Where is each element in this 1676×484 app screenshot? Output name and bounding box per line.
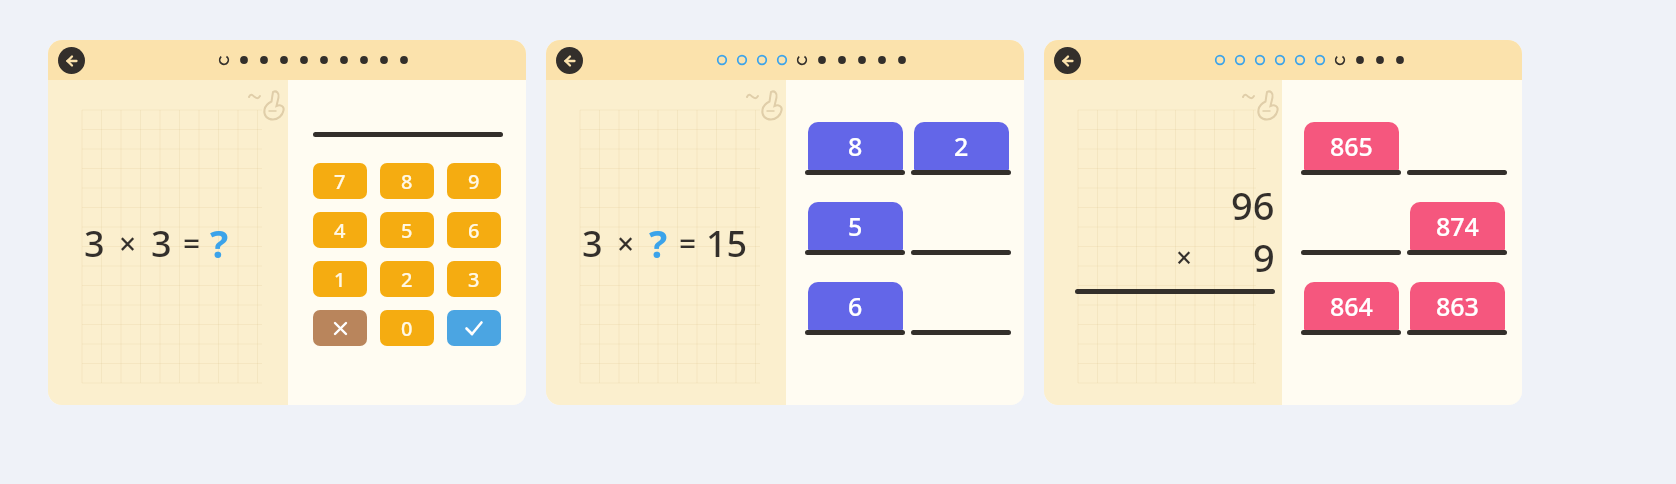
button[interactable]: 864	[1304, 282, 1399, 330]
button[interactable]: 865	[1304, 122, 1399, 170]
staticText: 3	[582, 219, 603, 268]
staticText: 9	[468, 168, 480, 195]
button[interactable]: 2	[380, 261, 434, 297]
button[interactable]: Back	[1054, 47, 1081, 74]
button[interactable]: 9	[447, 163, 501, 199]
button[interactable]: 6	[447, 212, 501, 248]
staticText: 865	[1330, 129, 1373, 163]
staticText: 2	[954, 129, 969, 163]
button[interactable]: 8	[808, 122, 903, 170]
button[interactable]: 2	[914, 122, 1009, 170]
staticText: 5	[848, 209, 863, 243]
button[interactable]: 5	[380, 212, 434, 248]
staticText: 6	[848, 289, 863, 323]
staticText: 15	[706, 219, 748, 268]
staticText: 0	[401, 315, 413, 342]
button[interactable]: Delete	[313, 310, 367, 346]
button[interactable]: 6	[808, 282, 903, 330]
staticText: 7	[334, 168, 346, 195]
staticText: 9	[1253, 231, 1275, 283]
button[interactable]: 7	[313, 163, 367, 199]
button[interactable]: Back	[58, 47, 85, 74]
staticText: 3	[151, 219, 172, 268]
button[interactable]: 8	[380, 163, 434, 199]
button[interactable]: 874	[1410, 202, 1505, 250]
staticText: 3	[468, 266, 480, 293]
button[interactable]: 3	[447, 261, 501, 297]
staticText: 8	[848, 129, 863, 163]
staticText: 4	[334, 217, 346, 244]
staticText: 863	[1436, 289, 1479, 323]
staticText: 96	[1231, 179, 1275, 231]
staticText: 2	[401, 266, 413, 293]
button[interactable]: 5	[808, 202, 903, 250]
staticText: =	[183, 223, 201, 264]
staticText: 8	[401, 168, 413, 195]
button[interactable]: 4	[313, 212, 367, 248]
staticText: ?	[210, 217, 229, 269]
button[interactable]: Back	[556, 47, 583, 74]
staticText: 3	[84, 219, 105, 268]
staticText: ×	[617, 223, 635, 264]
staticText: 1	[334, 266, 346, 293]
staticText: 5	[401, 217, 413, 244]
staticText: 864	[1330, 289, 1373, 323]
staticText: ×	[1176, 238, 1193, 276]
button[interactable]: 863	[1410, 282, 1505, 330]
staticText: =	[679, 223, 697, 264]
button[interactable]: 0	[380, 310, 434, 346]
button[interactable]: Confirm	[447, 310, 501, 346]
staticText: ×	[119, 223, 137, 264]
staticText: ?	[649, 217, 668, 269]
staticText: 6	[468, 217, 480, 244]
staticText: 874	[1436, 209, 1479, 243]
button[interactable]: 1	[313, 261, 367, 297]
